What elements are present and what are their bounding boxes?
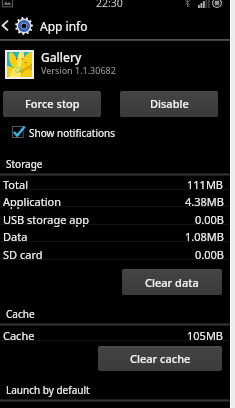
button[interactable]: Clear cache bbox=[98, 346, 222, 371]
button[interactable]: Application bbox=[0, 190, 230, 207]
staticText: Application bbox=[3, 194, 61, 209]
staticText: Data bbox=[3, 229, 28, 244]
staticText: 0.00B bbox=[195, 247, 224, 262]
staticText: Cache bbox=[3, 328, 35, 343]
button[interactable]: Show notifications bbox=[0, 120, 230, 144]
button[interactable]: SD card bbox=[0, 243, 230, 260]
button[interactable]: Cache bbox=[6, 307, 35, 321]
staticText: Force stop bbox=[25, 96, 80, 111]
button[interactable]: Clear data bbox=[122, 269, 222, 295]
staticText: 111MB bbox=[187, 177, 224, 192]
button[interactable]: Data bbox=[0, 225, 230, 242]
staticText: 0.00B bbox=[195, 212, 224, 227]
staticText: SD card bbox=[3, 247, 43, 262]
staticText: 4.38MB bbox=[185, 194, 224, 209]
staticText: Gallery bbox=[41, 49, 82, 65]
button[interactable]: USB storage app bbox=[0, 208, 230, 225]
staticText: Version 1.1.30682 bbox=[41, 64, 116, 76]
staticText: Show notifications bbox=[29, 126, 116, 140]
button[interactable]: Launch by default bbox=[6, 383, 90, 397]
staticText: Disable bbox=[150, 96, 189, 111]
staticText: 105MB bbox=[187, 328, 224, 343]
button[interactable]: Navigate up bbox=[0, 12, 230, 39]
button[interactable]: Force stop bbox=[3, 91, 101, 117]
staticText: 1.08MB bbox=[185, 229, 224, 244]
staticText: USB storage app bbox=[3, 212, 90, 227]
button[interactable]: Total bbox=[0, 173, 230, 190]
button[interactable]: Storage bbox=[6, 157, 43, 171]
staticText: 22:30 bbox=[96, 0, 123, 7]
staticText: Clear cache bbox=[130, 351, 191, 366]
staticText: Total bbox=[3, 177, 28, 192]
staticText: App info bbox=[40, 18, 88, 34]
button[interactable]: Disable bbox=[120, 91, 218, 117]
button[interactable]: Cache bbox=[0, 324, 230, 341]
staticText: Clear data bbox=[145, 275, 199, 290]
